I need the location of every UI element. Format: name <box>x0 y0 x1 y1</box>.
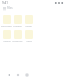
button[interactable]: Downloads <box>12 30 23 42</box>
staticText: Downloads <box>12 39 23 42</box>
staticText: 9:41 <box>2 1 8 5</box>
button[interactable]: Apps <box>23 30 34 42</box>
button[interactable]: Menu <box>2 6 6 10</box>
button[interactable]: Videos <box>1 30 12 42</box>
button[interactable]: Recents <box>24 72 30 78</box>
button[interactable]: Home <box>15 72 21 78</box>
staticText: Apps <box>26 39 32 42</box>
button[interactable]: Documents <box>1 15 12 27</box>
button[interactable]: Audio <box>23 15 34 27</box>
staticText: Files <box>7 6 13 10</box>
staticText: Images <box>13 24 22 27</box>
button[interactable]: Images <box>12 15 23 27</box>
button[interactable]: Back <box>6 72 12 78</box>
staticText: Audio <box>25 24 32 27</box>
staticText: Videos <box>3 39 11 42</box>
staticText: Documents <box>1 24 12 27</box>
